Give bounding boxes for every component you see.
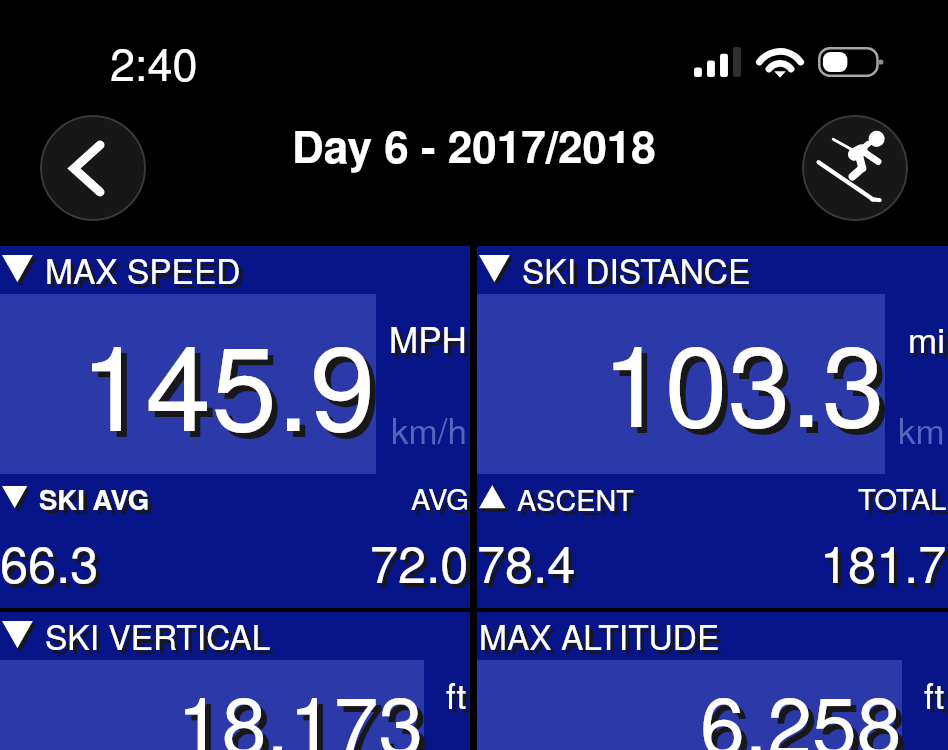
staticText: AVG xyxy=(411,477,469,519)
staticText: 2:40 xyxy=(110,29,198,93)
staticText: SKI AVG xyxy=(43,483,154,522)
staticText: SKI DISTANCE xyxy=(522,246,751,294)
staticText: 6,258 xyxy=(700,663,902,750)
button[interactable]: MAX ALTITUDE xyxy=(477,612,948,750)
button[interactable]: Back xyxy=(40,115,146,221)
staticText: SKI AVG xyxy=(39,479,150,518)
button[interactable]: SKI DISTANCE xyxy=(477,246,948,608)
button[interactable]: SKI VERTICAL xyxy=(0,612,470,750)
staticText: ft xyxy=(928,673,948,723)
staticText: 145.9 xyxy=(80,296,376,465)
staticText: Day 6 - 2017/2018 xyxy=(292,113,656,176)
staticText: 72.0 xyxy=(370,525,469,597)
staticText: mi xyxy=(912,317,948,367)
staticText: 78.4 xyxy=(477,525,576,597)
staticText: 18,173 xyxy=(183,669,430,750)
staticText: TOTAL xyxy=(862,481,948,523)
staticText: 145.9 xyxy=(86,302,382,471)
staticText: MAX SPEED xyxy=(45,246,241,294)
staticText: 78.4 xyxy=(481,529,580,601)
staticText: MPH xyxy=(389,313,467,363)
staticText: ASCENT xyxy=(521,482,638,523)
button[interactable]: Ski activity xyxy=(802,115,908,221)
staticText: ft xyxy=(446,669,467,719)
staticText: 181.7 xyxy=(820,525,947,597)
staticText: 72.0 xyxy=(374,529,473,601)
staticText: 66.3 xyxy=(4,529,103,601)
staticText: ft xyxy=(924,669,945,719)
button[interactable]: MAX SPEED xyxy=(0,246,470,608)
staticText: mi xyxy=(908,313,945,363)
staticText: 18,173 xyxy=(177,663,424,750)
staticText: ft xyxy=(450,673,471,723)
staticText: 103.3 xyxy=(608,303,891,465)
staticText: ASCENT xyxy=(517,478,634,519)
staticText: MAX ALTITUDE xyxy=(479,612,720,660)
staticText: 103.3 xyxy=(602,297,885,459)
staticText: MAX SPEED xyxy=(49,250,245,298)
staticText: MAX ALTITUDE xyxy=(483,616,724,664)
staticText: SKI VERTICAL xyxy=(45,612,271,660)
staticText: km/h xyxy=(391,404,467,454)
staticText: km xyxy=(898,404,945,454)
staticText: AVG xyxy=(415,481,473,523)
staticText: SKI VERTICAL xyxy=(49,616,275,664)
staticText: MPH xyxy=(393,317,471,367)
staticText: TOTAL xyxy=(858,477,947,519)
staticText: 6,258 xyxy=(706,669,908,750)
staticText: 181.7 xyxy=(824,529,948,601)
staticText: 66.3 xyxy=(0,525,99,597)
staticText: SKI DISTANCE xyxy=(526,250,755,298)
